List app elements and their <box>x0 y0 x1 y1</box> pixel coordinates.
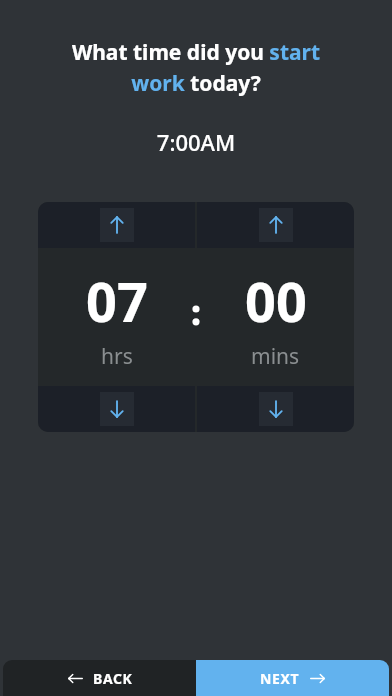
button[interactable]: Decrease hours <box>38 386 195 432</box>
staticText: mins <box>251 342 300 371</box>
button[interactable]: Increase minutes <box>197 202 354 248</box>
staticText: 7:00AM <box>0 127 392 157</box>
staticText: hrs <box>101 342 133 371</box>
staticText: 00 <box>245 264 307 338</box>
staticText: BACK <box>93 669 133 688</box>
button[interactable]: Increase hours <box>38 202 195 248</box>
staticText: What time did you start work today? <box>46 38 346 97</box>
button[interactable]: Decrease minutes <box>197 386 354 432</box>
staticText: NEXT <box>260 669 300 688</box>
button[interactable]: NEXT <box>196 660 389 696</box>
staticText: 07 <box>86 264 148 338</box>
button[interactable]: BACK <box>3 660 196 696</box>
